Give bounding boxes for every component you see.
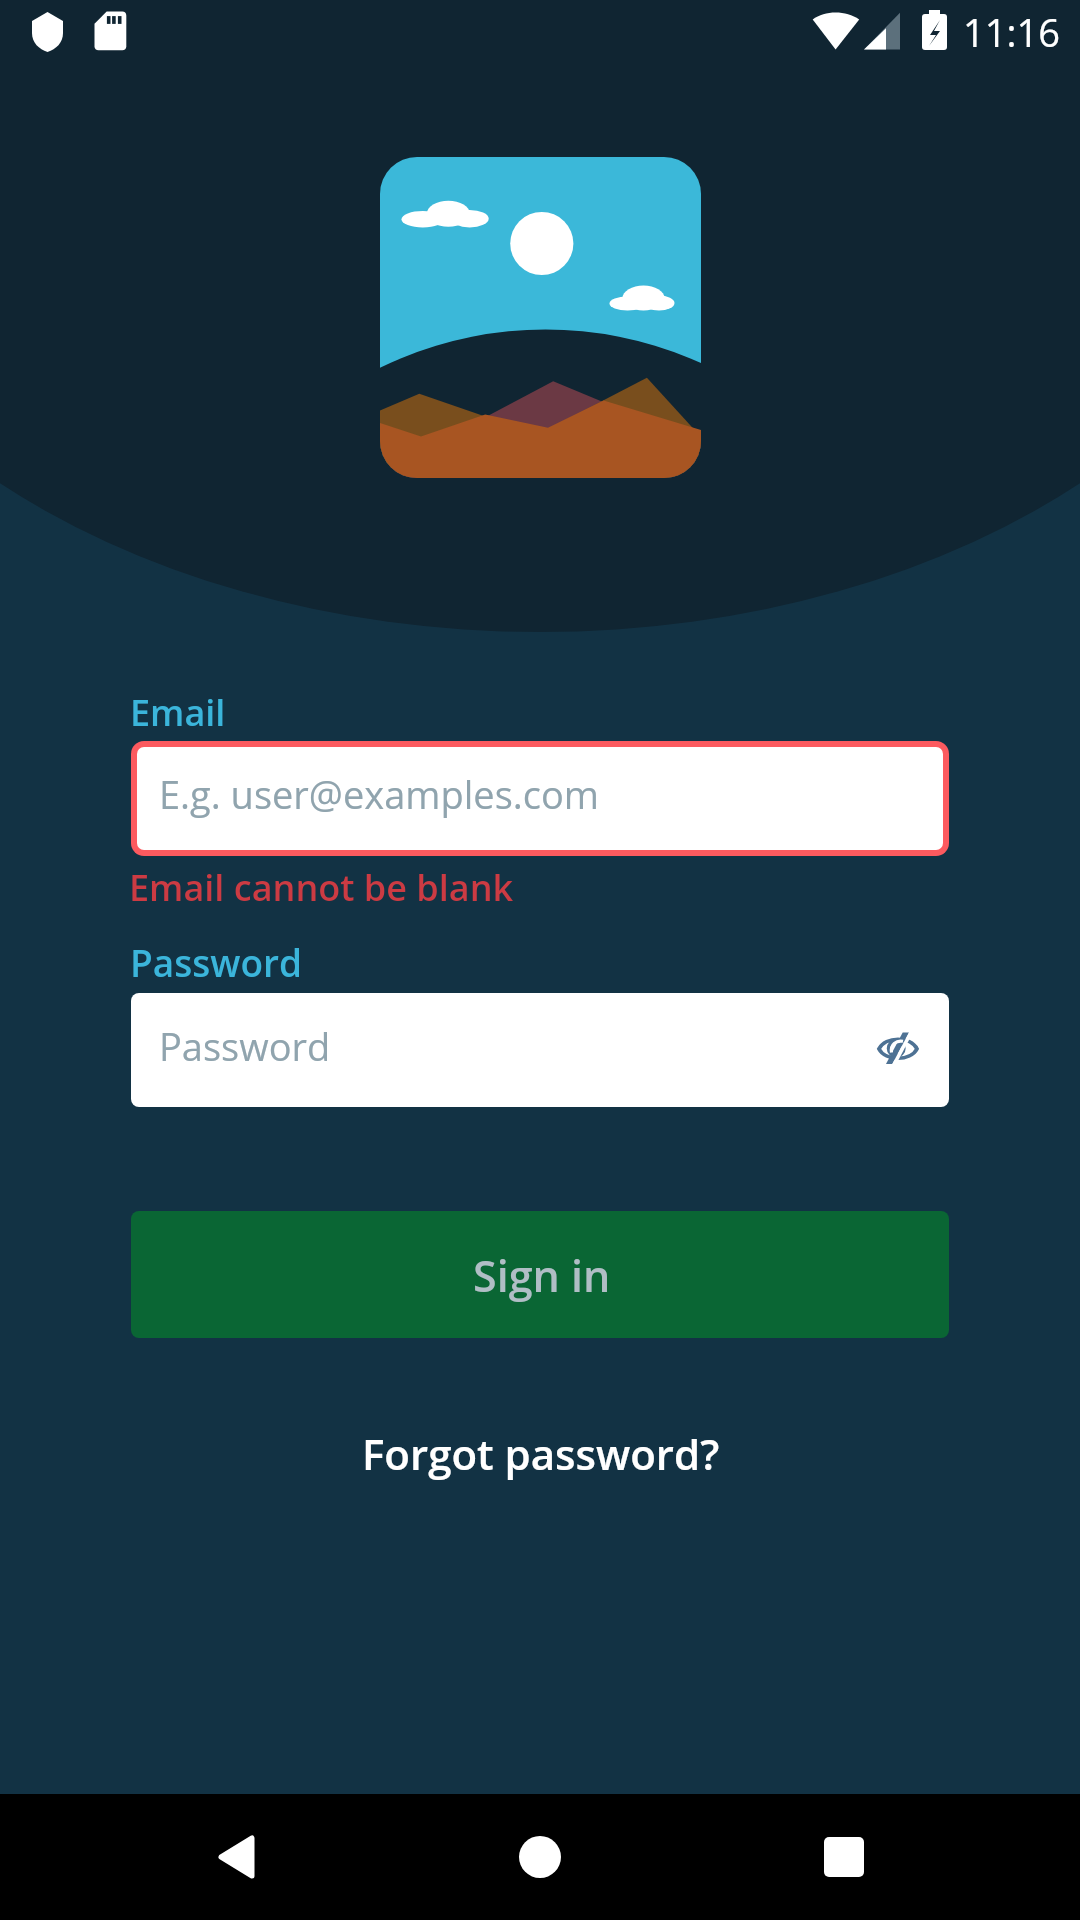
- staticText: Forgot password?: [362, 1425, 720, 1482]
- button[interactable]: Sign in: [131, 1211, 949, 1338]
- button[interactable]: Recents: [784, 1794, 904, 1914]
- staticText: Password: [159, 1020, 331, 1072]
- staticText: E.g. user@examples.com: [159, 768, 599, 820]
- button[interactable]: Password: [131, 993, 949, 1107]
- button[interactable]: Back: [176, 1794, 296, 1914]
- button[interactable]: Forgot password?: [356, 1415, 726, 1491]
- staticText: Sign in: [473, 1246, 611, 1305]
- staticText: Password: [130, 937, 302, 987]
- staticText: Email cannot be blank: [129, 863, 514, 912]
- staticText: 11:16: [963, 6, 1060, 58]
- staticText: Email: [130, 688, 226, 737]
- button[interactable]: E.g. user@examples.com: [137, 747, 943, 850]
- button[interactable]: Show password: [857, 1007, 939, 1089]
- button[interactable]: Home: [480, 1794, 600, 1914]
